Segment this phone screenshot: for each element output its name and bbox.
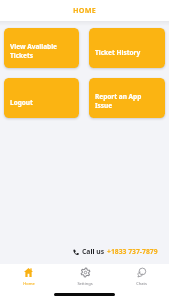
button[interactable]: Report an App Issue xyxy=(89,78,165,118)
button[interactable]: Call us xyxy=(0,244,158,258)
staticText: Ticket History xyxy=(95,48,141,57)
staticText: Chats xyxy=(136,281,147,286)
staticText: View Available Tickets xyxy=(10,42,57,60)
button[interactable]: Ticket History xyxy=(89,28,165,68)
button[interactable]: Settings xyxy=(57,264,113,300)
button[interactable]: Chats xyxy=(113,264,169,300)
staticText: Logout xyxy=(10,98,33,107)
staticText: +1833 737-7879 xyxy=(107,247,158,256)
staticText: Home xyxy=(23,281,35,286)
button[interactable]: Logout xyxy=(4,78,79,118)
button[interactable]: View Available Tickets xyxy=(4,28,79,68)
staticText: Settings xyxy=(77,281,93,286)
staticText: Call us xyxy=(82,247,105,256)
button[interactable]: Home xyxy=(0,264,57,300)
staticText: Report an App Issue xyxy=(95,92,142,110)
staticText: HOME xyxy=(73,5,96,15)
